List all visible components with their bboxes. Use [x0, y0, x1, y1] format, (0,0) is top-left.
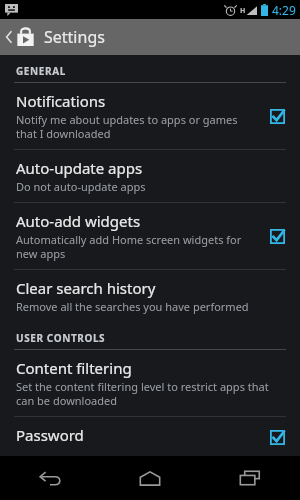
- button[interactable]: Auto-add widgets: [0, 203, 300, 269]
- button[interactable]: Toggle setting: [266, 426, 288, 448]
- button[interactable]: Back: [0, 456, 100, 500]
- button[interactable]: Toggle setting: [266, 225, 288, 247]
- staticText: Do not auto-update apps: [16, 179, 146, 194]
- button[interactable]: Auto-update apps: [0, 150, 300, 202]
- button[interactable]: Recent apps: [200, 456, 300, 500]
- staticText: Set the content filtering level to restr…: [16, 379, 269, 408]
- staticText: 4:29: [272, 2, 296, 18]
- staticText: Notify me about updates to apps or games…: [16, 112, 238, 141]
- button[interactable]: Clear search history: [0, 270, 300, 322]
- staticText: Clear search history: [16, 278, 156, 298]
- button[interactable]: Notifications: [0, 83, 300, 149]
- button[interactable]: Home: [100, 456, 200, 500]
- staticText: H: [240, 6, 246, 16]
- button[interactable]: Toggle setting: [266, 105, 288, 127]
- staticText: Automatically add Home screen widgets fo…: [16, 232, 242, 261]
- staticText: Auto-add widgets: [16, 211, 141, 231]
- button[interactable]: Navigate up, Settings: [0, 19, 300, 55]
- button[interactable]: Password: [0, 417, 300, 456]
- staticText: GENERAL: [16, 64, 66, 78]
- staticText: Remove all the searches you have perform…: [16, 299, 249, 314]
- staticText: Notifications: [16, 91, 106, 111]
- staticText: Content filtering: [16, 358, 132, 378]
- staticText: Settings: [44, 26, 105, 48]
- staticText: Auto-update apps: [16, 158, 143, 178]
- staticText: USER CONTROLS: [16, 331, 106, 345]
- staticText: Password: [16, 425, 84, 445]
- button[interactable]: Content filtering: [0, 350, 300, 416]
